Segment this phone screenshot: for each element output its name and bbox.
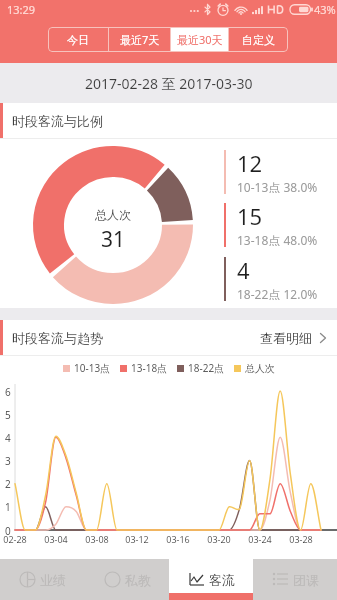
staticText: 2 bbox=[5, 477, 11, 491]
staticText: 03-12 bbox=[125, 533, 149, 545]
staticText: 43% bbox=[314, 2, 336, 17]
staticText: 3 bbox=[5, 454, 11, 468]
staticText: 13:29 bbox=[7, 2, 36, 17]
staticText: 时段客流与趋势 bbox=[12, 330, 103, 346]
staticText: 总人次 bbox=[245, 362, 275, 375]
button[interactable]: 查看明细 bbox=[250, 320, 337, 356]
staticText: 03-08 bbox=[85, 533, 109, 545]
button[interactable]: 业绩 bbox=[0, 559, 85, 600]
staticText: 最近7天 bbox=[120, 32, 160, 47]
staticText: 18-22点 bbox=[188, 361, 225, 375]
staticText: 4 bbox=[5, 431, 11, 445]
staticText: 总人次 bbox=[95, 207, 131, 222]
staticText: 业绩 bbox=[40, 572, 66, 588]
staticText: 6 bbox=[5, 385, 11, 399]
staticText: 时段客流与比例 bbox=[12, 113, 103, 129]
staticText: 自定义 bbox=[242, 33, 275, 47]
staticText: 10-13点 bbox=[74, 361, 111, 375]
staticText: 4 bbox=[237, 255, 250, 285]
staticText: 最近30天 bbox=[177, 32, 223, 47]
staticText: 查看明细 bbox=[260, 330, 312, 346]
staticText: 13-18点 48.0% bbox=[237, 232, 318, 246]
staticText: 10-13点 38.0% bbox=[237, 179, 318, 193]
button[interactable]: 最近30天 bbox=[171, 27, 228, 52]
staticText: 私教 bbox=[125, 572, 151, 588]
staticText: 03-20 bbox=[207, 533, 231, 545]
staticText: 02-28 bbox=[3, 533, 27, 545]
button[interactable]: 最近7天 bbox=[109, 27, 170, 52]
staticText: 今日 bbox=[67, 33, 89, 47]
staticText: 2017-02-28 至 2017-03-30 bbox=[85, 74, 253, 93]
button[interactable]: 今日 bbox=[48, 27, 108, 52]
button[interactable]: 客流 bbox=[169, 559, 253, 600]
button[interactable]: 团课 bbox=[253, 559, 337, 600]
staticText: 1 bbox=[5, 500, 11, 514]
staticText: 5 bbox=[5, 408, 11, 422]
staticText: 12 bbox=[237, 148, 263, 178]
staticText: 团课 bbox=[293, 572, 319, 588]
staticText: 03-16 bbox=[166, 533, 190, 545]
staticText: 客流 bbox=[209, 572, 235, 588]
staticText: 31 bbox=[101, 225, 126, 254]
staticText: 03-24 bbox=[248, 533, 272, 545]
staticText: 03-28 bbox=[289, 533, 313, 545]
staticText: 03-04 bbox=[44, 533, 68, 545]
button[interactable]: 自定义 bbox=[229, 27, 288, 52]
button[interactable]: 私教 bbox=[85, 559, 169, 600]
staticText: 13-18点 bbox=[131, 361, 168, 375]
staticText: 0 bbox=[5, 524, 11, 538]
staticText: 18-22点 12.0% bbox=[237, 286, 318, 300]
staticText: 15 bbox=[237, 201, 263, 231]
